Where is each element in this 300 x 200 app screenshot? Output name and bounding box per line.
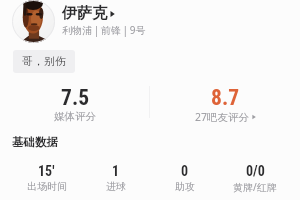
staticText: 媒体评分 (54, 110, 96, 123)
button[interactable]: 0 (150, 163, 220, 193)
button[interactable]: 15' (12, 163, 81, 193)
button[interactable]: 伊萨克 (62, 4, 115, 23)
staticText: 哥，别伤 (22, 54, 66, 68)
staticText: 0/0 (246, 163, 265, 179)
staticText: 出场时间 (27, 180, 67, 193)
staticText: 伊萨克 (62, 4, 107, 23)
staticText: 基础数据 (12, 135, 58, 149)
button[interactable]: Player photo (12, 0, 55, 43)
staticText: 8.7 (211, 85, 240, 110)
staticText: 黄牌/红牌 (233, 180, 277, 194)
staticText: 1 (112, 163, 120, 179)
staticText: 0 (181, 163, 189, 179)
button[interactable]: 8.7 (150, 85, 300, 124)
staticText: 进球 (106, 180, 126, 193)
staticText: 15' (38, 163, 55, 179)
staticText: 助攻 (175, 180, 195, 193)
staticText: 7.5 (61, 85, 90, 110)
staticText: 27吧友评分 (195, 110, 250, 124)
staticText: 利物浦 | 前锋 | 9号 (62, 23, 146, 37)
button[interactable]: 1 (81, 163, 150, 193)
button[interactable]: 7.5 (0, 85, 150, 123)
button[interactable]: 哥，别伤 (13, 50, 75, 73)
button[interactable]: 0/0 (220, 163, 290, 194)
